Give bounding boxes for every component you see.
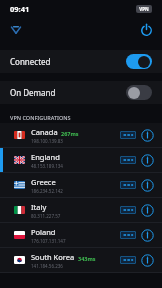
staticText: VPN (139, 6, 149, 12)
button[interactable]: Info (141, 179, 154, 192)
staticText: Connected (10, 56, 51, 67)
staticText: 198.100.139.83 (31, 138, 63, 144)
staticText: Greece (31, 177, 56, 187)
staticText: England (31, 152, 60, 162)
button[interactable]: Greece (0, 173, 162, 197)
button[interactable]: England (0, 148, 162, 172)
button[interactable]: Info (141, 204, 154, 217)
button[interactable]: Info (141, 154, 154, 167)
staticText: 48.153.189.134 (31, 163, 63, 169)
staticText: 80.311.227.57 (31, 213, 61, 219)
staticText: 176.107.131.147 (31, 238, 66, 244)
staticText: Italy (31, 202, 47, 212)
button[interactable]: Info (141, 129, 154, 142)
staticText: VPN CONFIGURATIONS (10, 114, 71, 121)
button[interactable]: On Demand (0, 81, 162, 104)
button[interactable]: South Korea (0, 248, 162, 272)
button[interactable]: Canada (0, 123, 162, 147)
staticText: On Demand (10, 87, 56, 98)
staticText: Poland (31, 227, 56, 237)
button[interactable]: Info (141, 229, 154, 242)
staticText: 09:41 (10, 4, 30, 14)
button[interactable]: Info (141, 254, 154, 267)
staticText: Canada (31, 127, 58, 137)
staticText: South Korea (31, 252, 75, 262)
button[interactable]: App logo (8, 22, 24, 38)
button[interactable]: Poland (0, 223, 162, 247)
staticText: 267ms (61, 130, 79, 137)
staticText: 186.234.52.142 (31, 188, 63, 194)
button[interactable]: Italy (0, 198, 162, 222)
button[interactable]: Connected (0, 50, 162, 73)
staticText: 343ms (78, 255, 96, 262)
button[interactable]: Refresh (138, 22, 154, 38)
staticText: 141.184.56.236 (31, 263, 63, 269)
